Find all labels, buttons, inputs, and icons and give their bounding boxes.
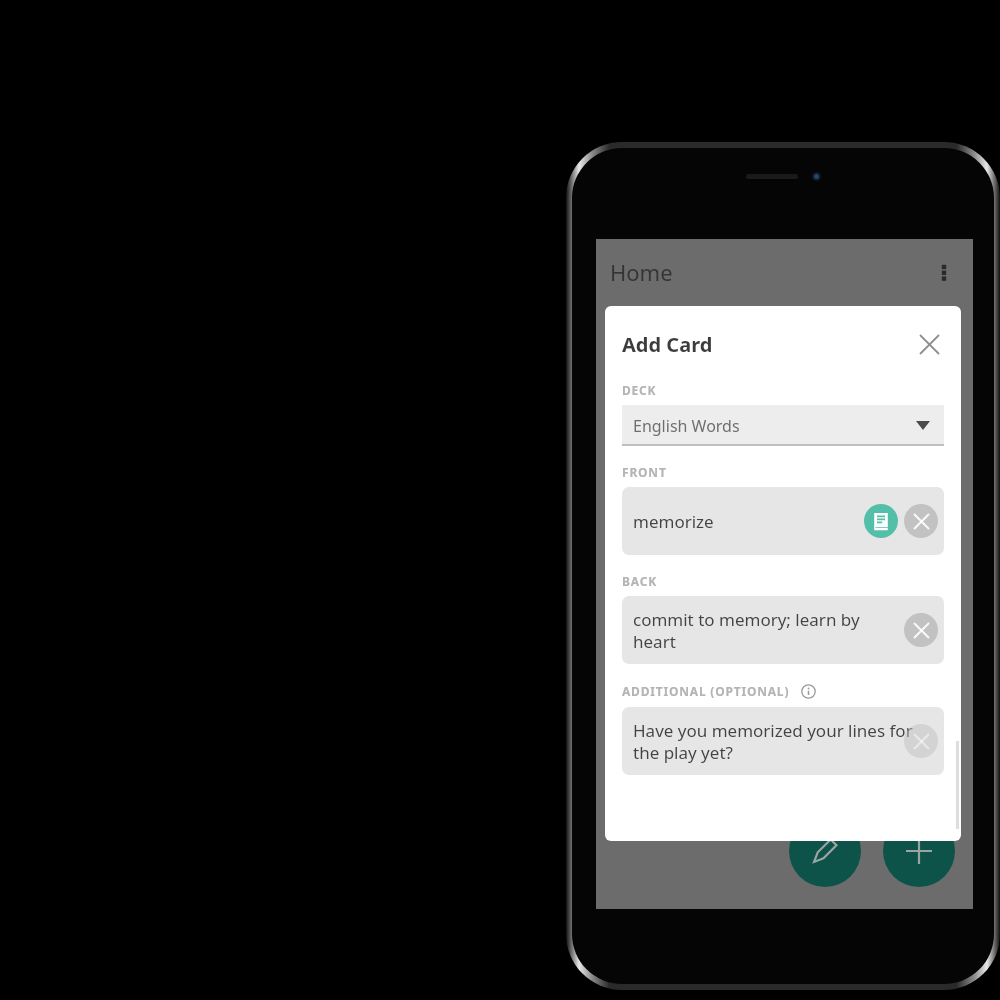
button[interactable]: Clear [904, 613, 938, 647]
button[interactable]: memorize [622, 487, 944, 555]
button[interactable]: Dictionary [864, 504, 898, 538]
button[interactable]: English Words [622, 405, 944, 446]
staticText: Add Card [622, 331, 713, 358]
staticText: commit to memory; learn by heart [633, 608, 888, 653]
button[interactable]: Clear [904, 504, 938, 538]
button[interactable]: Have you memorized your lines for the pl… [622, 707, 944, 775]
button[interactable]: More options [927, 255, 961, 289]
button[interactable]: Edit [789, 815, 861, 887]
staticText: ADDITIONAL (OPTIONAL) [622, 683, 790, 699]
staticText: DECK [622, 382, 657, 398]
button[interactable]: Information [799, 682, 817, 700]
button[interactable]: commit to memory; learn by heart [622, 596, 944, 664]
button[interactable]: Close [911, 326, 947, 362]
staticText: FRONT [622, 464, 667, 480]
button[interactable]: Add [883, 815, 955, 887]
staticText: Home [610, 257, 673, 287]
staticText: Have you memorized your lines for the pl… [633, 719, 936, 764]
staticText: memorize [633, 510, 714, 533]
staticText: BACK [622, 573, 657, 589]
button[interactable]: Clear [904, 724, 938, 758]
staticText: English Words [633, 415, 740, 437]
